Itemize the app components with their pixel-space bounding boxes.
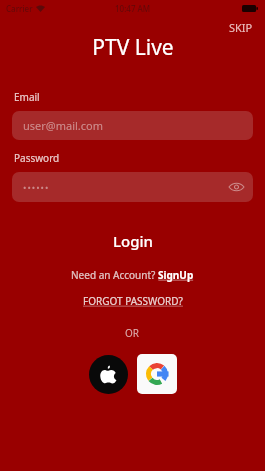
staticText: FORGOT PASSWORD? <box>83 294 183 308</box>
button[interactable]: FORGOT PASSWORD? <box>79 292 187 310</box>
staticText: 10:47 AM <box>115 3 151 14</box>
staticText: Email <box>14 90 40 104</box>
button[interactable]: SKIP <box>223 16 259 39</box>
button[interactable]: •••••• <box>12 172 253 202</box>
staticText: PTV Live <box>92 33 174 62</box>
staticText: OR <box>125 326 140 340</box>
button[interactable]: Sign in with Google <box>137 354 177 394</box>
staticText: Need an Account? <box>71 268 158 282</box>
staticText: •••••• <box>23 181 50 193</box>
staticText: SignUp <box>158 268 194 282</box>
button[interactable]: Sign in with Apple <box>89 355 128 394</box>
button[interactable]: user@mail.com <box>12 111 253 140</box>
button[interactable]: Login <box>99 226 167 256</box>
staticText: user@mail.com <box>23 118 104 133</box>
button[interactable]: Show password <box>227 178 245 196</box>
button[interactable]: SignUp <box>158 268 194 282</box>
staticText: SKIP <box>229 20 253 35</box>
staticText: Password <box>14 151 60 165</box>
staticText: Carrier <box>6 3 33 14</box>
staticText: Login <box>113 231 153 251</box>
